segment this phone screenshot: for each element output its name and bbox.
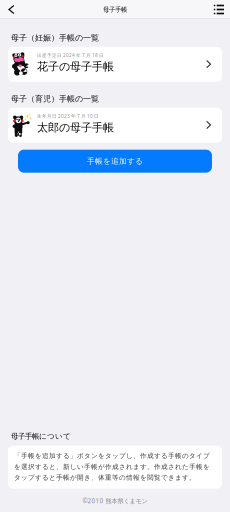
button[interactable]: 出産予定日 2024 年 7 月 18 日: [8, 47, 222, 82]
button[interactable]: 戻る: [0, 0, 15, 18]
staticText: ©2010 熊本県くまモン: [82, 497, 147, 505]
staticText: 太郎の母子手帳: [37, 121, 114, 134]
button[interactable]: 生年月日 2023 年 7 月 10 日: [8, 108, 222, 143]
button[interactable]: 手帳を追加する: [18, 150, 212, 173]
staticText: 生年月日 2023 年 7 月 10 日: [37, 113, 99, 119]
staticText: 母子（育児）手帳の一覧: [11, 94, 99, 104]
staticText: 手帳を追加する: [87, 156, 143, 166]
staticText: 「手帳を追加する」ボタンをタップし、作成する手帳のタイプを選択すると、新しい手帳…: [14, 452, 210, 482]
staticText: 母子（妊娠）手帳の一覧: [11, 33, 99, 43]
staticText: 花子の母子手帳: [37, 60, 114, 73]
staticText: 出産予定日 2024 年 7 月 18 日: [37, 52, 104, 58]
staticText: 母子手帳について: [11, 432, 71, 441]
button[interactable]: 一覧: [214, 1, 230, 18]
staticText: 母子手帳: [103, 6, 127, 13]
